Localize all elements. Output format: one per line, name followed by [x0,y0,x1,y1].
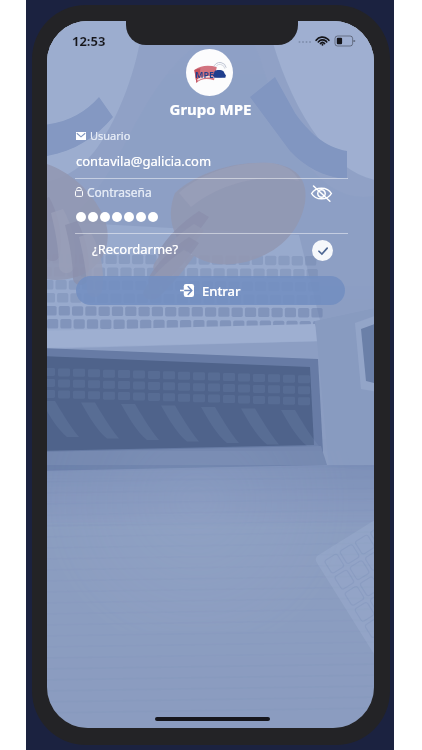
button[interactable]: Recordarme [312,240,333,261]
staticText: Entrar [202,282,241,300]
staticText: MPE [195,68,215,80]
staticText: ¿Recordarme? [92,240,179,258]
staticText: 12:53 [72,32,106,50]
staticText: Contraseña [87,184,152,200]
button[interactable]: Entrar [76,276,345,305]
staticText: contavila@galicia.com [76,152,212,170]
button[interactable]: Mostrar contraseña [305,180,337,206]
staticText: Grupo MPE [47,99,374,119]
button[interactable]: ¿Recordarme? [92,237,332,261]
staticText: Usuario [90,128,131,143]
